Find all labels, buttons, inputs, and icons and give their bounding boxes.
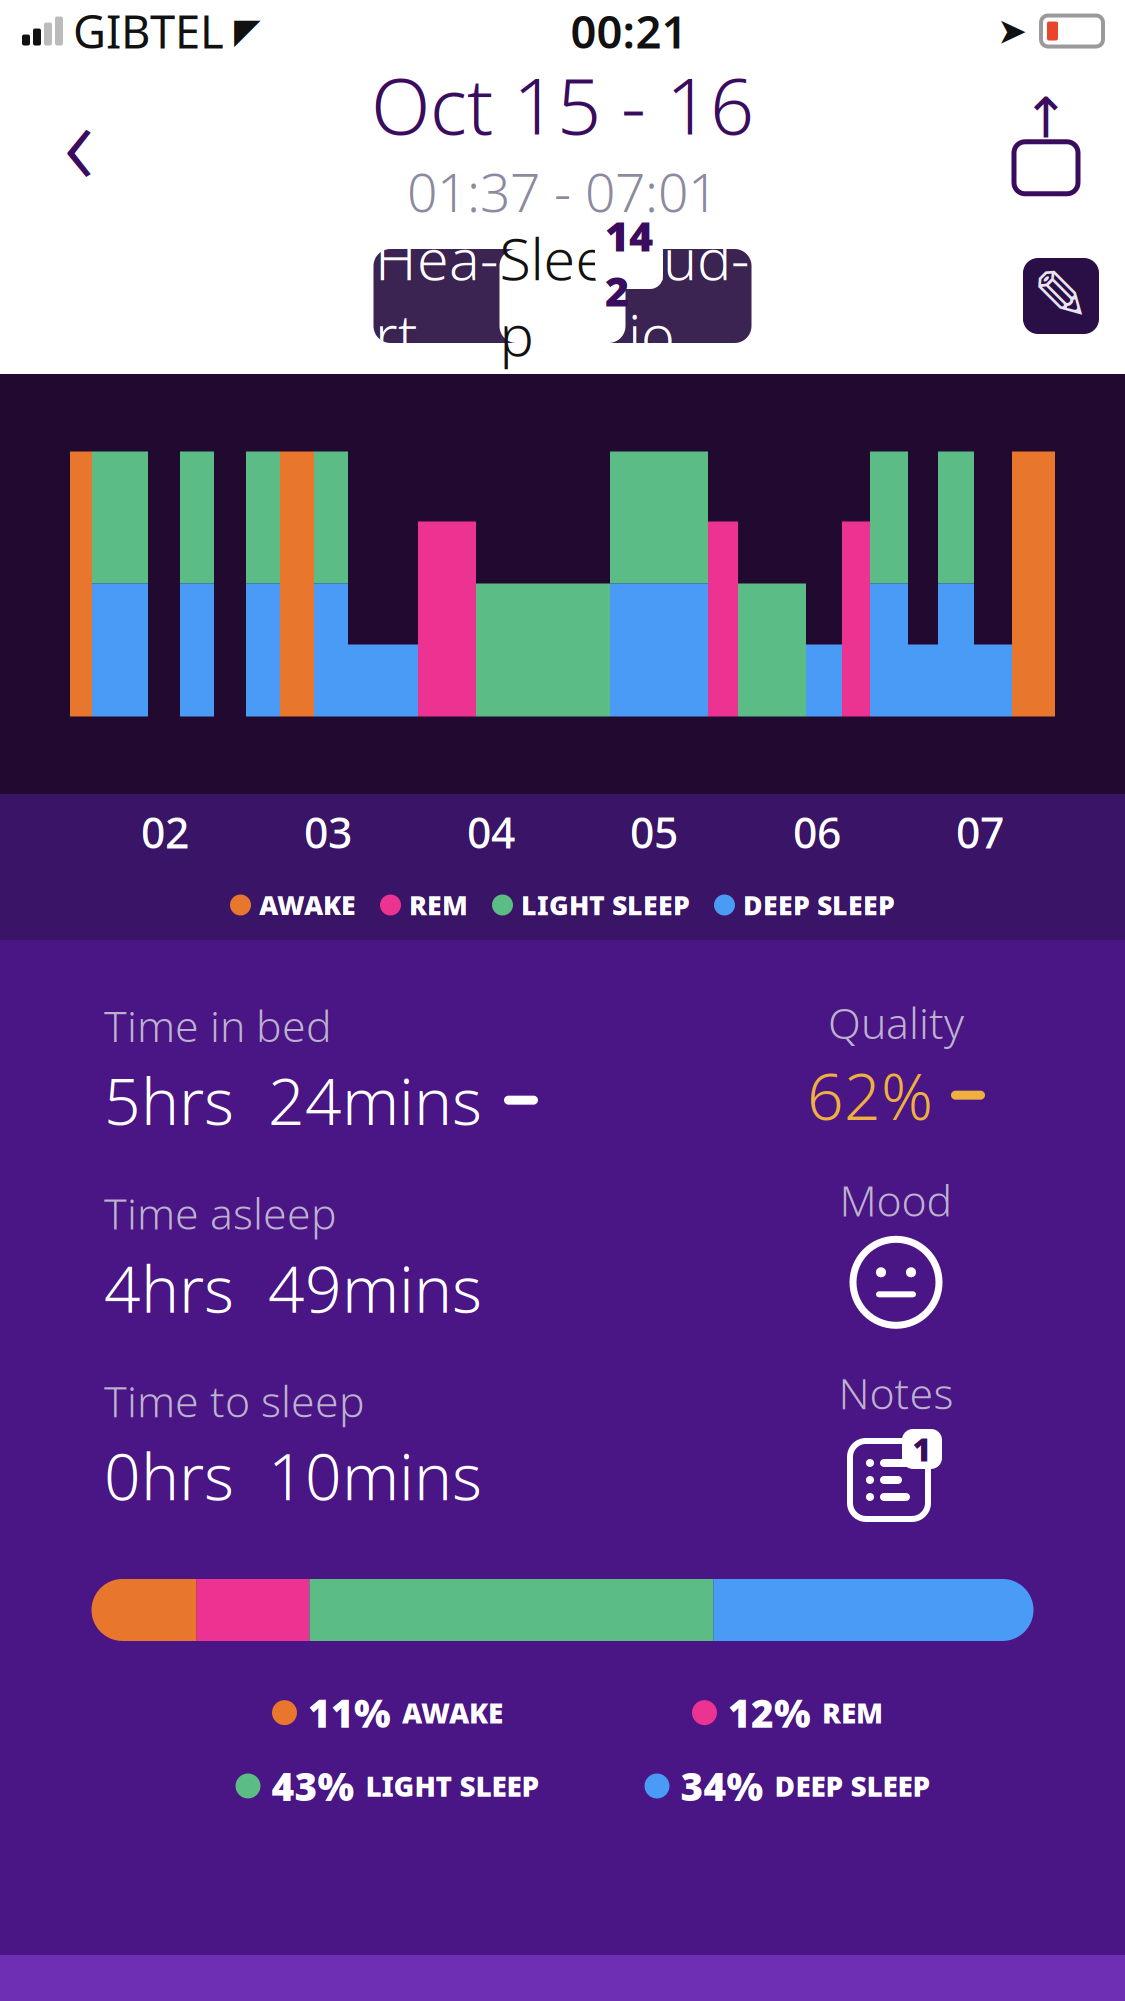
staticText: 43% xyxy=(271,1760,354,1812)
staticText: Quality xyxy=(828,994,964,1051)
staticText: 07 xyxy=(956,804,1004,860)
staticText: 1 xyxy=(912,1428,931,1470)
button[interactable]: Share xyxy=(991,80,1101,200)
button[interactable]: Back xyxy=(24,80,134,200)
staticText: Sleep xyxy=(499,220,625,372)
staticText: ◤ xyxy=(234,11,261,51)
staticText: AWAKE xyxy=(259,887,356,923)
staticText: 12% xyxy=(728,1687,811,1738)
staticText: 05 xyxy=(630,804,678,860)
staticText: Time to sleep xyxy=(104,1372,365,1429)
staticText: 03 xyxy=(304,804,352,860)
staticText: AWAKE xyxy=(402,1694,503,1731)
staticText: 0hrs 10mins xyxy=(104,1433,482,1518)
staticText: 02 xyxy=(141,804,189,860)
staticText: 06 xyxy=(793,804,841,860)
staticText: ✎ xyxy=(1032,257,1090,335)
staticText: ↑ xyxy=(1022,86,1069,150)
staticText: LIGHT SLEEP xyxy=(521,887,690,923)
staticText: 62% xyxy=(807,1053,933,1138)
staticText: Time in bed xyxy=(104,997,332,1054)
staticText: 04 xyxy=(467,804,515,860)
staticText: Time asleep xyxy=(104,1185,337,1241)
button[interactable]: Sleep xyxy=(499,249,625,343)
staticText: 142 xyxy=(605,208,653,318)
staticText: 4hrs 49mins xyxy=(104,1245,482,1330)
button[interactable]: Edit xyxy=(1023,258,1099,334)
staticText: 00:21 xyxy=(570,1,687,61)
staticText: 5hrs 24mins xyxy=(104,1058,482,1143)
button[interactable]: Heart xyxy=(373,249,499,343)
staticText: Audio xyxy=(628,220,749,372)
staticText: REM xyxy=(409,887,468,923)
button[interactable]: Notes, 1 note xyxy=(844,1427,948,1521)
staticText: DEEP SLEEP xyxy=(774,1767,930,1805)
staticText: REM xyxy=(822,1694,883,1731)
staticText: 34% xyxy=(680,1760,763,1812)
staticText: Mood xyxy=(839,1172,952,1228)
staticText: GIBTEL xyxy=(73,1,224,61)
staticText: Oct 15 - 16 xyxy=(371,53,754,156)
button[interactable]: Mood: neutral xyxy=(848,1234,944,1330)
staticText: ‹ xyxy=(63,62,94,218)
staticText: Notes xyxy=(838,1364,953,1421)
staticText: LIGHT SLEEP xyxy=(365,1767,539,1805)
staticText: 01:37 - 07:01 xyxy=(407,156,718,227)
button[interactable]: Audio xyxy=(625,249,751,343)
staticText: DEEP SLEEP xyxy=(743,887,895,923)
staticText: ➤ xyxy=(997,11,1027,51)
staticText: 11% xyxy=(308,1687,391,1738)
staticText: Heart xyxy=(375,220,498,372)
